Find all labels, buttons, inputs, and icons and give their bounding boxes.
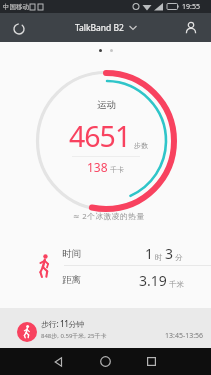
staticText: 13:45-13:56: [165, 331, 204, 341]
button[interactable]: 时间: [0, 242, 211, 265]
button[interactable]: TalkBand B2: [75, 22, 137, 34]
staticText: 时: [155, 253, 163, 262]
button[interactable]: [85, 348, 125, 375]
staticText: ≈ 2个冰激凌的热量: [73, 211, 145, 222]
staticText: 时间: [62, 248, 81, 260]
staticText: 3: [165, 244, 174, 263]
staticText: 19:55: [182, 2, 200, 12]
staticText: 中国移动: [3, 3, 29, 11]
staticText: 步数: [134, 141, 148, 150]
button[interactable]: [131, 348, 172, 375]
staticText: 距离: [62, 274, 81, 286]
staticText: 3.19: [139, 271, 167, 290]
staticText: 千米: [169, 280, 184, 289]
staticText: 运动: [97, 99, 116, 111]
staticText: 分: [175, 253, 183, 262]
staticText: 848步, 0.59千米, 25千卡: [41, 332, 107, 340]
staticText: TalkBand B2: [75, 22, 124, 34]
button[interactable]: 步行: 11分钟: [0, 308, 211, 348]
staticText: 4651: [69, 117, 131, 156]
staticText: 1: [145, 244, 154, 263]
button[interactable]: 距离: [0, 266, 211, 294]
staticText: 步行: 11分钟: [41, 318, 85, 329]
staticText: 千卡: [110, 165, 124, 174]
button[interactable]: [183, 20, 199, 36]
staticText: 138: [87, 159, 108, 175]
button[interactable]: [10, 20, 28, 38]
button[interactable]: [38, 348, 78, 375]
